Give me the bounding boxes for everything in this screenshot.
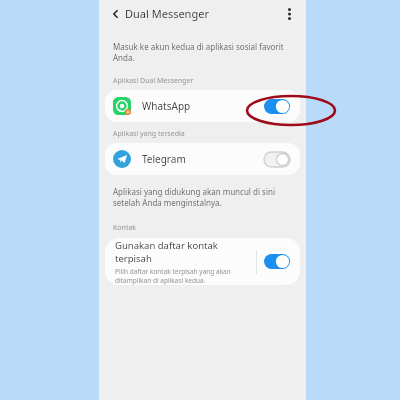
button[interactable]: Back	[107, 5, 125, 23]
button[interactable]: More options	[280, 5, 298, 23]
button[interactable]: Telegram	[105, 143, 300, 175]
staticText: Gunakan daftar kontak terpisah	[115, 239, 256, 265]
staticText: Dual Messenger	[125, 6, 209, 21]
button[interactable]: Gunakan daftar kontak terpisah	[105, 238, 300, 285]
staticText: Kontak	[113, 223, 137, 233]
staticText: WhatsApp	[142, 99, 191, 113]
button[interactable]: WhatsApp	[105, 90, 300, 122]
button[interactable]	[264, 152, 290, 167]
button[interactable]	[264, 99, 290, 114]
button[interactable]	[264, 254, 290, 269]
staticText: Telegram	[142, 152, 186, 166]
staticText: Pilih daftar kontak terpisah yang akan d…	[115, 267, 231, 285]
staticText: Aplikasi yang didukung akan muncul di si…	[113, 186, 275, 209]
staticText: Masuk ke akun kedua di aplikasi sosial f…	[113, 41, 284, 64]
staticText: Aplikasi Dual Messenger	[113, 76, 194, 86]
staticText: Aplikasi yang tersedia	[113, 129, 185, 139]
